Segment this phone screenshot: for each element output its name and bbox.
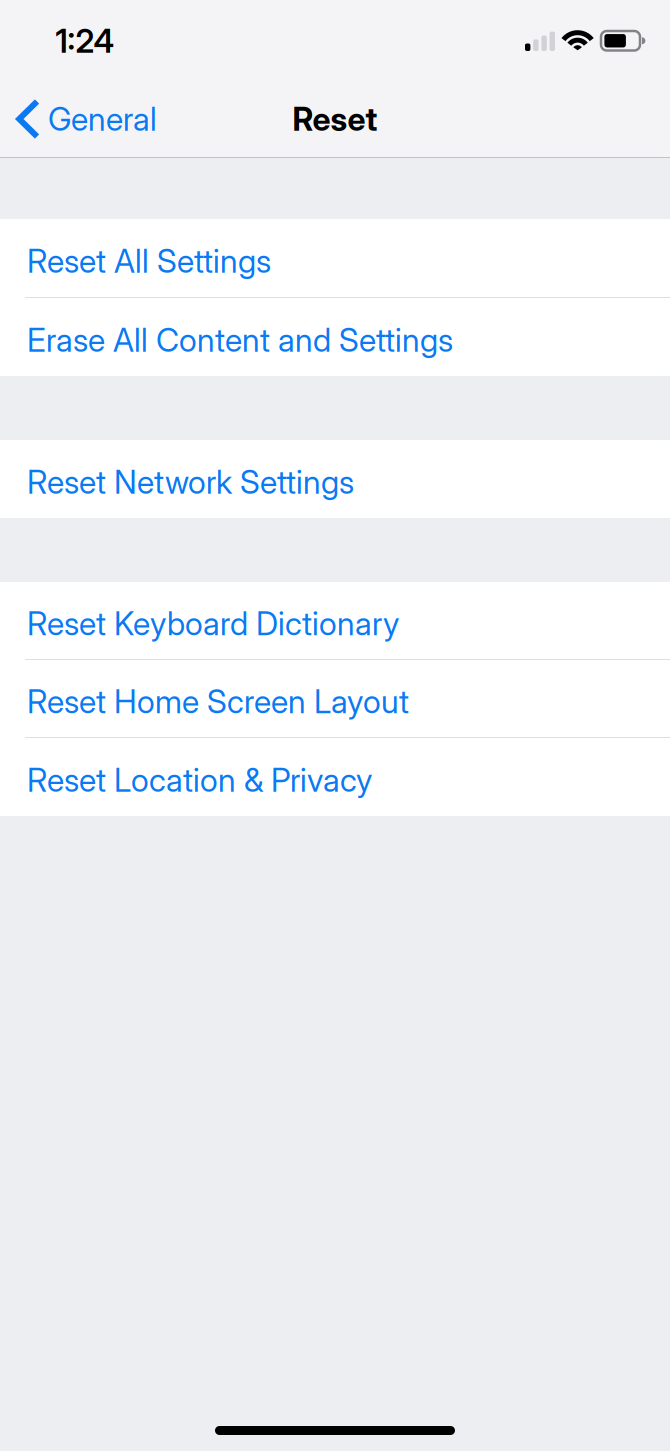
staticText: Reset Network Settings: [27, 463, 354, 501]
staticText: Reset All Settings: [27, 242, 271, 280]
button[interactable]: Reset Network Settings: [0, 440, 670, 518]
staticText: 1:24: [55, 22, 114, 60]
button[interactable]: Reset All Settings: [0, 219, 670, 298]
button[interactable]: Reset Location & Privacy: [0, 738, 670, 816]
staticText: General: [48, 100, 157, 138]
button[interactable]: Reset Home Screen Layout: [0, 660, 670, 738]
staticText: Erase All Content and Settings: [27, 321, 453, 359]
staticText: Reset: [292, 100, 377, 138]
staticText: Reset Home Screen Layout: [27, 682, 409, 721]
button[interactable]: General: [0, 89, 169, 149]
staticText: Reset Keyboard Dictionary: [27, 604, 399, 643]
button[interactable]: Reset Keyboard Dictionary: [0, 582, 670, 660]
button[interactable]: Erase All Content and Settings: [0, 298, 670, 376]
staticText: Reset Location & Privacy: [27, 761, 372, 799]
